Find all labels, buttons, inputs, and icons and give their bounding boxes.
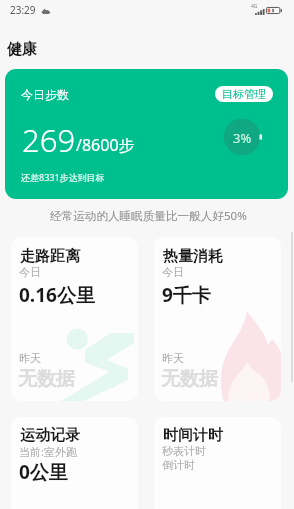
staticText: 健康 [7,40,37,59]
staticText: 热量消耗 [163,247,223,266]
button[interactable]: 今日步数 [5,69,288,199]
staticText: 昨天 [162,351,184,365]
staticText: 今日 [162,265,184,279]
staticText: 无数据 [161,367,218,391]
button[interactable]: 走路距离 [11,237,138,401]
staticText: 23:29 [10,3,36,17]
staticText: 倒计时 [162,458,195,472]
button[interactable]: 运动记录 [11,417,138,509]
staticText: 3% [233,129,252,147]
staticText: 9千卡 [162,282,211,308]
staticText: 运动记录 [20,426,80,445]
staticText: 时间计时 [163,426,223,445]
staticText: 0公里 [19,459,68,485]
staticText: 目标管理 [222,87,266,101]
staticText: 今日步数 [21,87,69,102]
button[interactable]: 目标管理 [215,86,273,102]
staticText: 走路距离 [20,247,80,266]
staticText: 0.16公里 [19,282,95,308]
other: Step tracker [41,6,51,16]
staticText: /8600步 [76,134,135,156]
staticText: 当前:室外跑 [19,444,77,459]
button[interactable]: 热量消耗 [154,237,281,401]
staticText: 还差8331步达到目标 [21,171,105,183]
staticText: 秒表计时 [162,444,206,458]
staticText: 269 [22,119,76,161]
staticText: 今日 [19,265,41,279]
staticText: 无数据 [18,367,75,391]
button[interactable]: 时间计时 [154,417,281,509]
staticText: 昨天 [19,351,41,365]
staticText: 4G [251,3,258,10]
button[interactable]: 健康 [7,40,37,59]
staticText: 经常运动的人睡眠质量比一般人好50% [50,208,247,224]
